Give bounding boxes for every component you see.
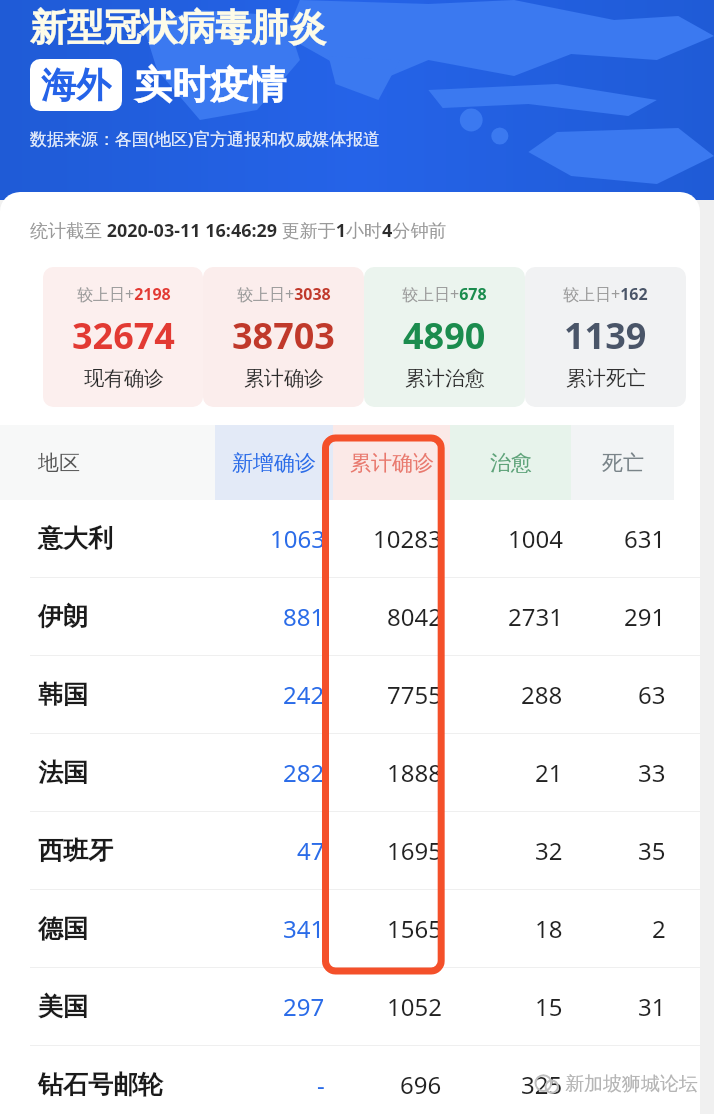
staticText: 35 xyxy=(638,834,666,867)
staticText: 死亡 xyxy=(602,450,644,476)
staticText: 1139 xyxy=(564,311,647,360)
staticText: 282 xyxy=(283,756,325,789)
staticText: 较上日+678 xyxy=(402,283,487,305)
staticText: 2731 xyxy=(508,600,563,633)
staticText: 297 xyxy=(283,990,325,1023)
staticText: 21 xyxy=(535,756,563,789)
staticText: 累计治愈 xyxy=(405,366,485,391)
staticText: 32 xyxy=(535,834,563,867)
staticText: 海外 xyxy=(41,63,111,107)
button[interactable]: 意大利 xyxy=(0,500,700,577)
staticText: 1888 xyxy=(387,756,442,789)
staticText: 较上日+162 xyxy=(563,283,648,305)
button[interactable]: 钻石号邮轮 xyxy=(0,1045,700,1114)
staticText: 7755 xyxy=(387,678,442,711)
staticText: 美国 xyxy=(38,991,88,1022)
staticText: 696 xyxy=(400,1068,442,1101)
staticText: 288 xyxy=(521,678,563,711)
staticText: 新型冠状病毒肺炎 xyxy=(30,4,326,51)
staticText: 法国 xyxy=(38,757,88,788)
staticText: 325 xyxy=(521,1068,563,1101)
button[interactable]: 较上日+678 xyxy=(364,267,525,407)
staticText: 2 xyxy=(652,912,666,945)
button[interactable]: 德国 xyxy=(0,889,700,967)
button[interactable]: 治愈 xyxy=(450,425,571,500)
staticText: 38703 xyxy=(232,311,335,360)
staticText: 8042 xyxy=(387,600,442,633)
staticText: 德国 xyxy=(38,913,88,944)
button[interactable]: 伊朗 xyxy=(0,577,700,655)
staticText: 291 xyxy=(624,600,666,633)
staticText: 1052 xyxy=(387,990,442,1023)
staticText: 631 xyxy=(624,522,666,555)
staticText: 累计确诊 xyxy=(244,366,324,391)
button[interactable]: 法国 xyxy=(0,733,700,811)
staticText: - xyxy=(317,1068,325,1101)
staticText: 881 xyxy=(283,600,325,633)
staticText: 31 xyxy=(638,990,666,1023)
staticText: 现有确诊 xyxy=(84,366,164,391)
staticText: 15 xyxy=(535,990,563,1023)
staticText: 较上日+3038 xyxy=(237,283,331,305)
staticText: 西班牙 xyxy=(38,835,113,866)
staticText: 32674 xyxy=(72,311,175,360)
staticText: 10283 xyxy=(373,522,442,555)
staticText: 4890 xyxy=(403,311,486,360)
staticText: 韩国 xyxy=(38,679,88,710)
button[interactable]: 较上日+162 xyxy=(525,267,686,407)
button[interactable]: 累计确诊 xyxy=(333,425,450,500)
staticText: 累计死亡 xyxy=(566,366,646,391)
staticText: 1063 xyxy=(270,522,325,555)
staticText: 地区 xyxy=(38,450,80,476)
button[interactable]: 较上日+2198 xyxy=(43,267,203,407)
staticText: 341 xyxy=(283,912,325,945)
button[interactable]: 西班牙 xyxy=(0,811,700,889)
button[interactable]: 较上日+3038 xyxy=(203,267,364,407)
button[interactable]: 新增确诊 xyxy=(215,425,333,500)
staticText: 63 xyxy=(638,678,666,711)
staticText: 18 xyxy=(535,912,563,945)
staticText: 242 xyxy=(283,678,325,711)
button[interactable]: 死亡 xyxy=(571,425,674,500)
staticText: 较上日+2198 xyxy=(77,283,171,305)
staticText: 1695 xyxy=(387,834,442,867)
staticText: 33 xyxy=(638,756,666,789)
staticText: 统计截至 2020-03-11 16:46:29 更新于1小时4分钟前 xyxy=(30,218,447,243)
staticText: 累计确诊 xyxy=(350,450,434,476)
staticText: 新增确诊 xyxy=(232,450,316,476)
staticText: 意大利 xyxy=(38,523,113,554)
staticText: 47 xyxy=(297,834,325,867)
staticText: 1565 xyxy=(387,912,442,945)
button[interactable]: 美国 xyxy=(0,967,700,1045)
staticText: 治愈 xyxy=(490,450,532,476)
button[interactable]: 韩国 xyxy=(0,655,700,733)
staticText: 1004 xyxy=(508,522,563,555)
staticText: 实时疫情 xyxy=(134,61,286,109)
staticText: 伊朗 xyxy=(38,601,88,632)
staticText: 新加坡狮城论坛 xyxy=(565,1072,698,1096)
staticText: 钻石号邮轮 xyxy=(38,1069,163,1100)
staticText: 数据来源：各国(地区)官方通报和权威媒体报道 xyxy=(30,127,381,150)
